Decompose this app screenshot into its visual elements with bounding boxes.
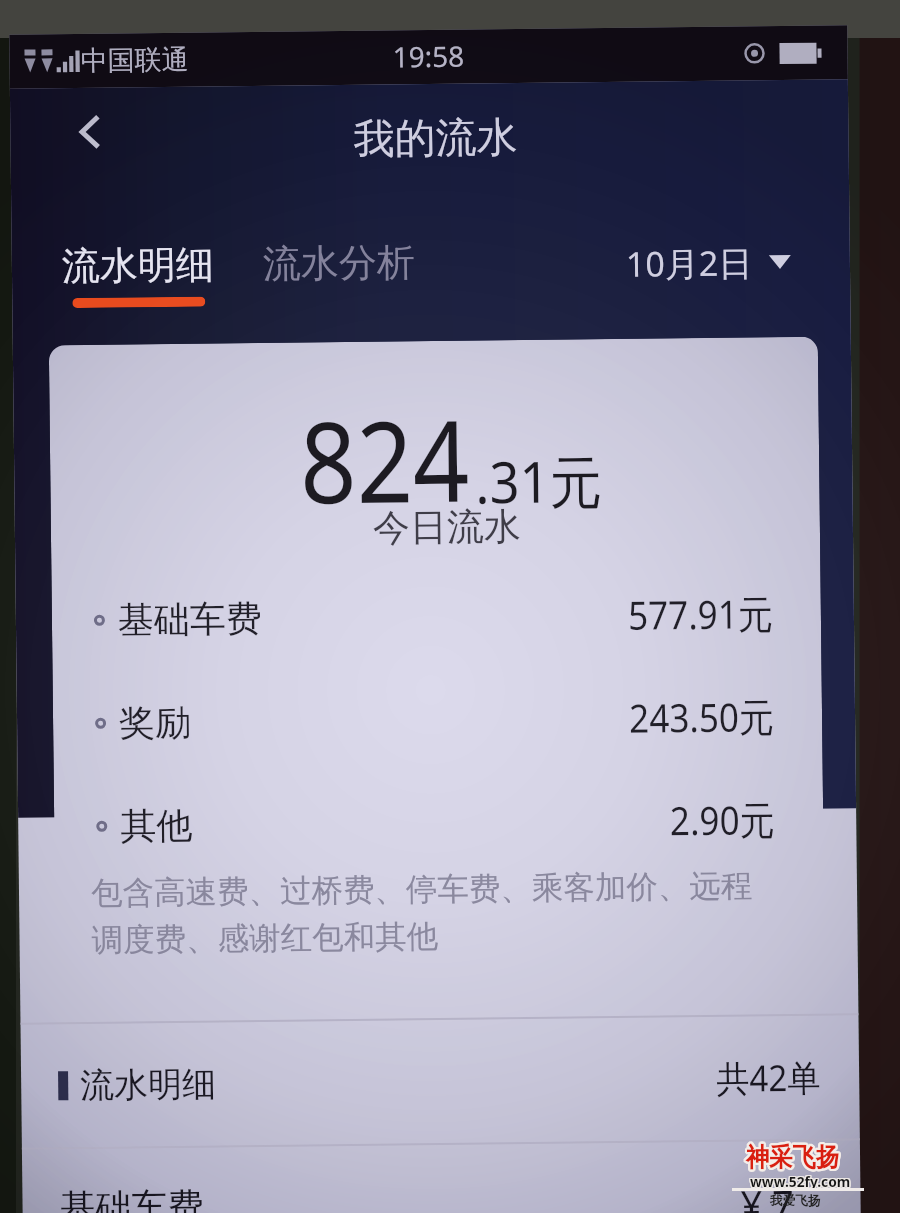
button[interactable]: 基础车费: [94, 583, 773, 649]
button[interactable]: 基础车费: [59, 1177, 823, 1213]
staticText: ¥ 7.: [740, 1177, 805, 1213]
staticText: www.52fy.com: [749, 1171, 850, 1191]
staticText: 神采飞扬: [746, 1141, 839, 1173]
staticText: 神采飞扬: [748, 1142, 841, 1174]
staticText: 神采飞扬: [744, 1142, 837, 1174]
staticText: 流水明细: [62, 240, 214, 290]
button[interactable]: 流水明细: [62, 240, 214, 308]
staticText: 今日流水: [373, 503, 521, 552]
staticText: 神采飞扬: [747, 1142, 840, 1174]
staticText: 包含高速费、过桥费、停车费、乘客加价、远程 调度费、感谢红包和其他: [91, 866, 754, 960]
staticText: www.52fy.com: [750, 1171, 851, 1191]
staticText: 基础车费: [118, 596, 262, 643]
staticText: 神采飞扬: [745, 1139, 838, 1171]
button[interactable]: 10月2日: [626, 239, 791, 287]
staticText: 神采飞扬: [746, 1142, 839, 1174]
staticText: 流水明细: [80, 1062, 216, 1107]
button[interactable]: 其他: [96, 789, 775, 855]
staticText: 2.90元: [670, 792, 775, 846]
button[interactable]: 返回: [58, 99, 123, 164]
staticText: 神采飞扬: [745, 1142, 838, 1174]
staticText: 19:58: [392, 37, 465, 75]
staticText: www.52fy.com: [749, 1170, 850, 1190]
staticText: 其他: [120, 803, 192, 849]
staticText: 神采飞扬: [744, 1141, 837, 1173]
staticText: 577.91元: [628, 586, 773, 641]
staticText: 神采飞扬: [745, 1140, 838, 1172]
staticText: 神采飞扬: [745, 1141, 838, 1173]
staticText: 神采飞扬: [746, 1139, 839, 1171]
staticText: 共42单: [716, 1053, 821, 1103]
staticText: www.52fy.com: [750, 1171, 851, 1191]
staticText: 神采飞扬: [748, 1141, 841, 1173]
staticText: 824: [299, 382, 471, 536]
staticText: 我爱飞扬: [770, 1193, 820, 1209]
button[interactable]: 流水明细: [57, 1016, 822, 1147]
staticText: 神采飞扬: [748, 1140, 841, 1172]
staticText: www.52fy.com: [750, 1172, 851, 1192]
staticText: 神采飞扬: [747, 1143, 840, 1175]
staticText: 基础车费: [59, 1184, 204, 1213]
staticText: 奖励: [119, 700, 191, 746]
staticText: www.52fy.com: [751, 1172, 852, 1192]
staticText: 神采飞扬: [747, 1141, 840, 1173]
staticText: 243.50元: [629, 689, 774, 744]
staticText: 神采飞扬: [747, 1139, 840, 1171]
staticText: www.52fy.com: [751, 1171, 852, 1191]
staticText: 神采飞扬: [747, 1140, 840, 1172]
staticText: .31元: [475, 441, 603, 520]
button[interactable]: 奖励: [95, 686, 774, 752]
staticText: 我的流水: [353, 112, 518, 166]
staticText: www.52fy.com: [750, 1170, 851, 1190]
staticText: 10月2日: [626, 239, 753, 287]
staticText: 神采飞扬: [744, 1140, 837, 1172]
staticText: 神采飞扬: [746, 1140, 839, 1172]
staticText: www.52fy.com: [751, 1170, 852, 1190]
button[interactable]: 流水分析: [263, 238, 415, 288]
staticText: 神采飞扬: [746, 1143, 839, 1175]
staticText: 神采飞扬: [745, 1143, 838, 1175]
staticText: 中国联通: [80, 43, 189, 78]
staticText: 神采飞扬: [746, 1141, 839, 1173]
staticText: www.52fy.com: [749, 1172, 850, 1192]
